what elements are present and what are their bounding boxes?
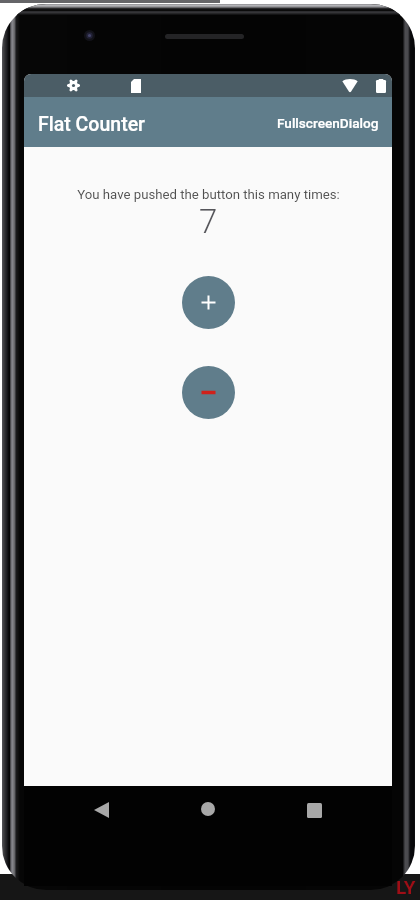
staticText: LY — [396, 876, 416, 898]
button[interactable]: Increment — [182, 276, 235, 329]
button[interactable]: Recent apps — [298, 794, 330, 826]
staticText: Flat Counter — [38, 113, 145, 136]
staticText: 7 — [199, 202, 218, 241]
staticText: FullscreenDialog — [277, 115, 379, 131]
staticText: You have pushed the button this many tim… — [77, 187, 340, 202]
button[interactable]: Back — [85, 794, 117, 826]
button[interactable]: Decrement — [182, 366, 235, 419]
button[interactable]: Home — [192, 793, 224, 825]
button[interactable]: FullscreenDialog — [269, 107, 387, 139]
